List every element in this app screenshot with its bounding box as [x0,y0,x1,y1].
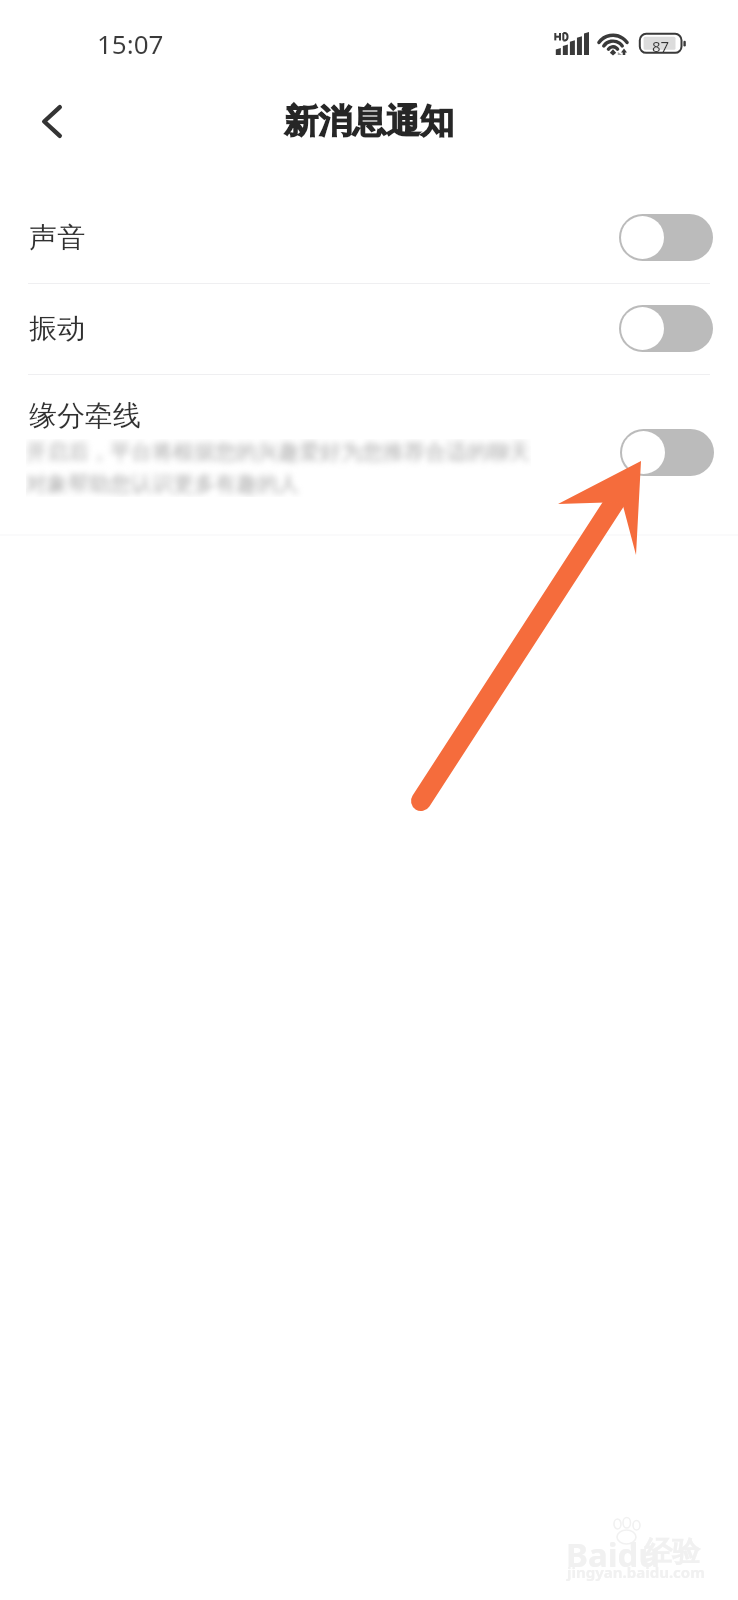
staticText: 声音 [29,220,85,255]
button[interactable]: Back [27,96,77,146]
staticText: Baidu [566,1532,660,1577]
button[interactable]: 振动 [0,283,738,374]
button[interactable]: 声音 [0,192,738,283]
staticText: 振动 [29,311,85,346]
button[interactable]: Toggle switch [619,305,713,352]
button[interactable]: 缘分牵线 [0,374,738,536]
button[interactable]: Toggle switch [620,429,714,476]
staticText: 87 [652,36,670,56]
staticText: jingyan.baidu.com [567,1562,705,1582]
staticText: 经验 [644,1534,700,1569]
staticText: 开启后，平台将根据您的兴趣爱好为您推荐合适的聊天 对象帮助您认识更多有趣的人 [26,439,531,497]
staticText: 新消息通知 [284,100,454,143]
button[interactable]: Toggle switch [619,214,713,261]
staticText: 15:07 [97,26,164,61]
staticText: 缘分牵线 [29,398,141,433]
